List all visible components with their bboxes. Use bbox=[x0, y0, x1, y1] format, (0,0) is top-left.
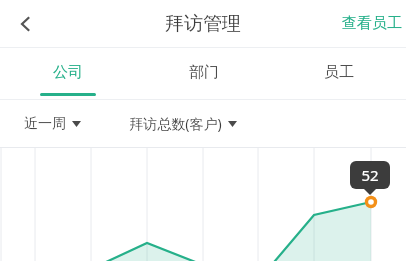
staticText: 部门 bbox=[189, 63, 219, 82]
button[interactable]: 部门 bbox=[136, 47, 271, 100]
staticText: 近一周 bbox=[24, 115, 66, 133]
button[interactable]: 拜访总数(客户) bbox=[127, 108, 239, 139]
staticText: 员工 bbox=[324, 63, 354, 82]
button[interactable]: Back bbox=[6, 4, 46, 44]
button[interactable]: 查看员工 bbox=[338, 8, 406, 39]
button[interactable]: 公司 bbox=[0, 47, 136, 100]
staticText: 公司 bbox=[53, 63, 83, 82]
staticText: 查看员工 bbox=[342, 14, 402, 33]
staticText: 拜访管理 bbox=[165, 12, 241, 36]
staticText: 52 bbox=[361, 165, 379, 185]
staticText: 拜访总数(客户) bbox=[129, 114, 222, 133]
button[interactable]: 近一周 bbox=[22, 109, 83, 139]
button[interactable]: 员工 bbox=[271, 47, 406, 100]
